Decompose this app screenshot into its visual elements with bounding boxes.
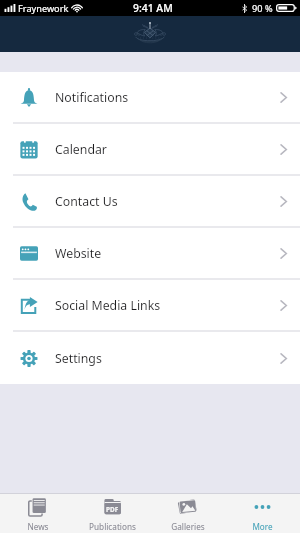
button[interactable]: Website [0, 228, 300, 280]
button[interactable]: Notifications [0, 72, 300, 124]
button[interactable]: Calendar [0, 124, 300, 176]
staticText: Galleries [171, 521, 205, 532]
button[interactable]: News [0, 494, 75, 533]
staticText: Settings [55, 350, 102, 367]
staticText: More [252, 521, 273, 532]
button[interactable]: Social Media Links [0, 280, 300, 332]
staticText: News [27, 521, 49, 532]
staticText: Calendar [55, 141, 107, 158]
staticText: Notifications [55, 89, 129, 106]
staticText: Social Media Links [55, 297, 161, 314]
button[interactable]: Settings [0, 332, 300, 384]
staticText: Fraynework [18, 2, 69, 15]
staticText: 9:41 AM [133, 1, 173, 15]
button[interactable]: More [225, 494, 300, 533]
button[interactable]: Galleries [150, 494, 225, 533]
staticText: Contact Us [55, 193, 118, 210]
button[interactable]: Contact Us [0, 176, 300, 228]
button[interactable]: PDF [75, 494, 150, 533]
staticText: Publications [89, 521, 136, 532]
staticText: 90 % [252, 2, 273, 15]
staticText: Website [55, 245, 102, 262]
staticText: PDF [106, 505, 119, 514]
